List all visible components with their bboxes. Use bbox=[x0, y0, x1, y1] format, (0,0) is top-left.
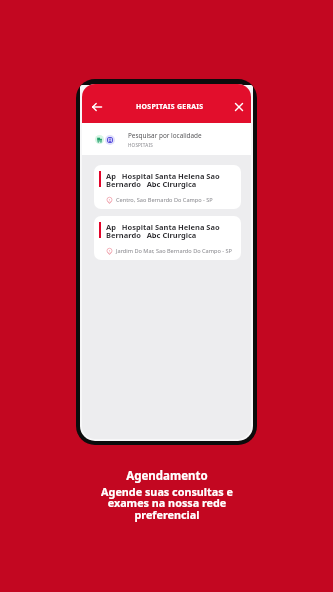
button[interactable]: Back bbox=[86, 96, 108, 118]
staticText: Agendamento bbox=[126, 468, 208, 484]
staticText: Jardim Do Mar, Sao Bernardo Do Campo - S… bbox=[116, 247, 232, 255]
staticText: Pesquisar por localidade bbox=[128, 131, 202, 140]
staticText: HOSPITAIS bbox=[128, 142, 153, 148]
button[interactable]: Ap Hospital Santa Helena Sao Bernardo Ab… bbox=[94, 165, 241, 209]
button[interactable]: Pesquisar por localidade bbox=[82, 123, 251, 155]
staticText: HOSPITAIS GERAIS bbox=[136, 102, 204, 111]
staticText: Ap Hospital Santa Helena Sao Bernardo Ab… bbox=[106, 222, 229, 241]
button[interactable]: Ap Hospital Santa Helena Sao Bernardo Ab… bbox=[94, 216, 241, 260]
button[interactable]: Close bbox=[228, 96, 250, 118]
staticText: Agende suas consultas e exames na nossa … bbox=[101, 484, 233, 522]
staticText: Ap Hospital Santa Helena Sao Bernardo Ab… bbox=[106, 171, 229, 190]
staticText: Centro, Sao Bernardo Do Campo - SP bbox=[116, 196, 213, 204]
